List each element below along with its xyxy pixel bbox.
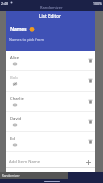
button[interactable]: Hide <box>10 59 19 68</box>
staticText: Charlie <box>10 96 24 102</box>
staticText: 100% <box>93 1 102 6</box>
button[interactable]: Delete <box>86 137 95 146</box>
button[interactable]: Alice <box>6 51 95 71</box>
button[interactable]: Delete <box>86 97 95 106</box>
button[interactable]: Add item <box>84 158 93 167</box>
staticText: Ed <box>10 136 15 142</box>
staticText: Names <box>10 25 27 32</box>
button[interactable]: Show <box>10 79 19 88</box>
staticText: David <box>10 116 22 122</box>
button[interactable]: David <box>6 112 95 132</box>
button[interactable]: Delete <box>86 117 95 126</box>
button[interactable]: Charlie <box>6 92 95 112</box>
button[interactable]: Hide <box>10 140 19 149</box>
staticText: Alice <box>10 55 20 61</box>
staticText: 2:48 <box>1 1 8 6</box>
button[interactable]: Hide <box>10 120 19 129</box>
staticText: Randomizer <box>40 5 63 10</box>
button[interactable]: Ed <box>6 132 95 152</box>
staticText: Add Item Name <box>9 159 41 165</box>
button[interactable]: Add Item Name <box>6 154 95 170</box>
staticText: Bob <box>10 75 18 81</box>
button[interactable]: Bob <box>6 71 95 92</box>
staticText: List Editor <box>39 13 62 19</box>
button[interactable]: Delete <box>86 56 95 65</box>
button[interactable]: Delete <box>86 76 95 85</box>
staticText: Names to pick from <box>9 37 44 42</box>
staticText: Randomizer <box>0 174 20 178</box>
button[interactable]: Hide <box>10 100 19 109</box>
